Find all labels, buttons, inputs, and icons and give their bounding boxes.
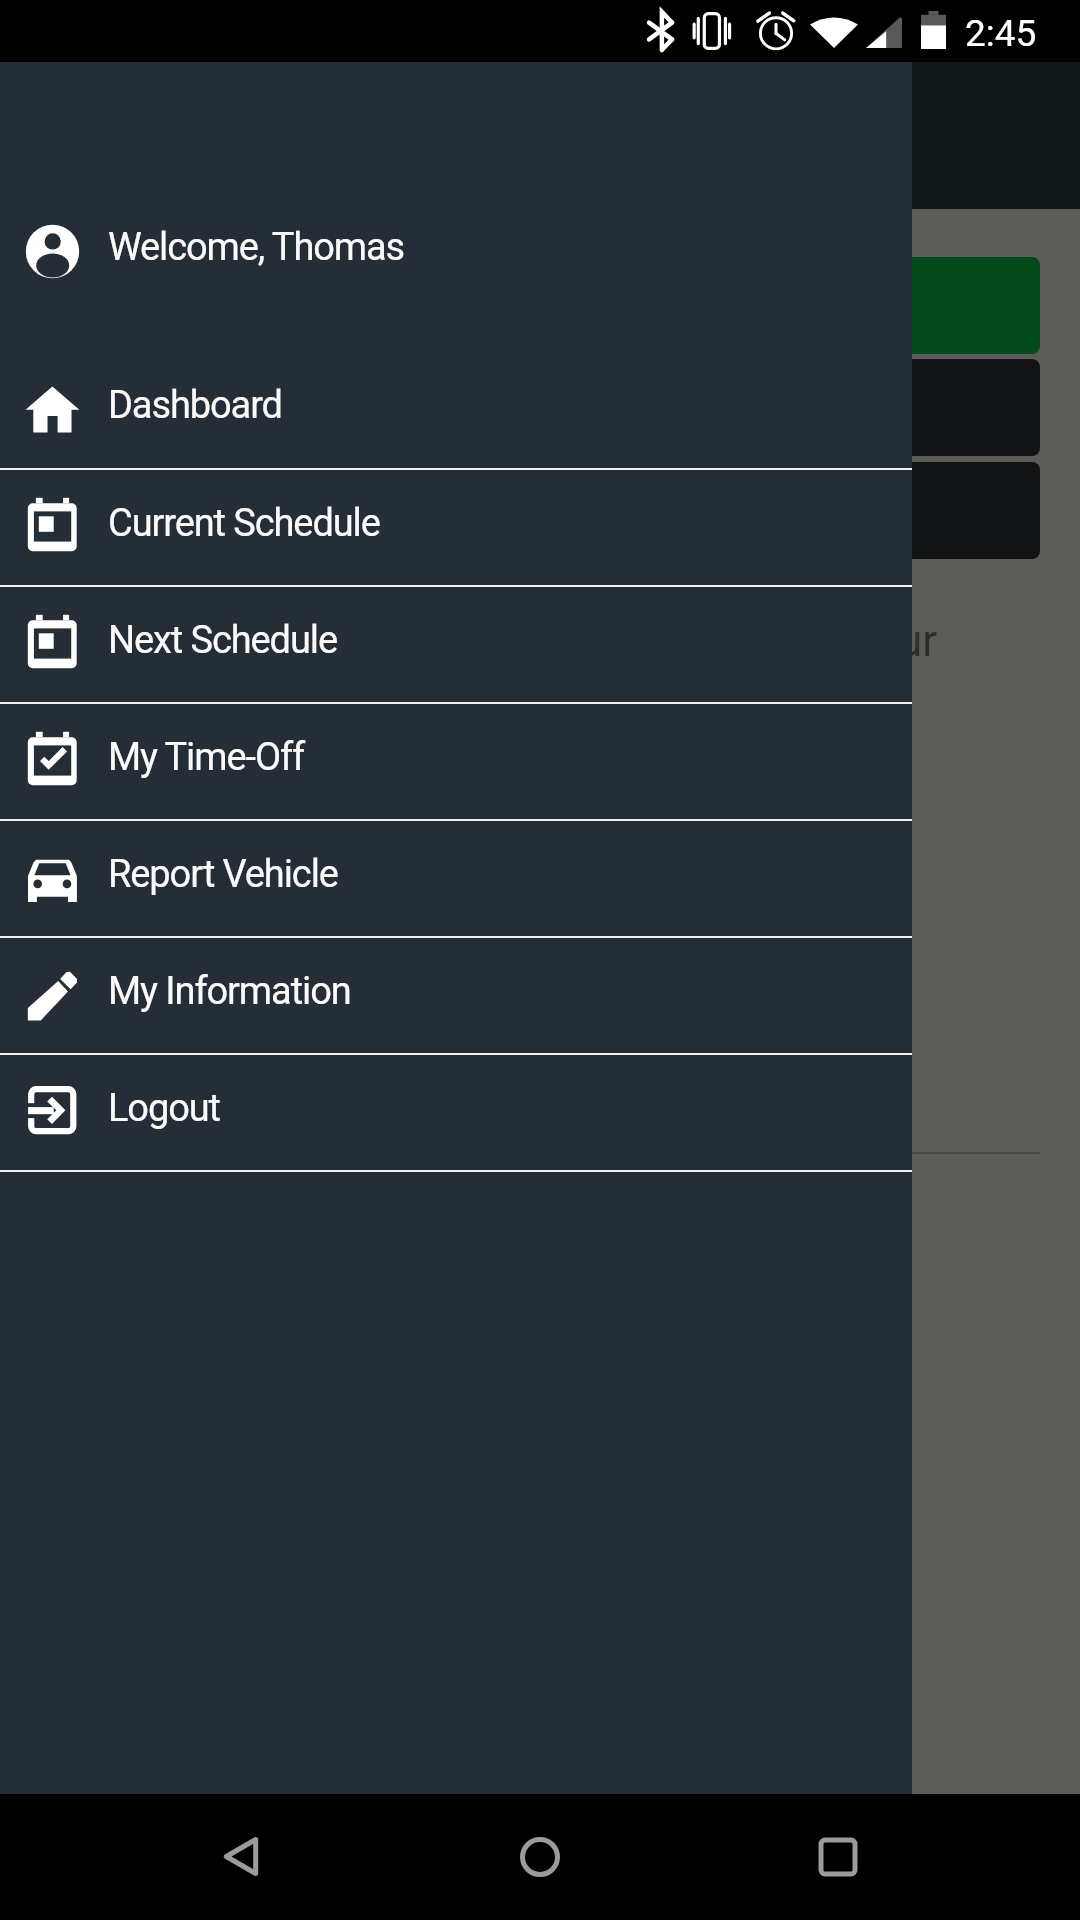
button[interactable]: Recent apps [778,1794,898,1920]
button[interactable]: Home [480,1794,600,1920]
staticText: Dashboard [108,383,282,428]
button[interactable]: Welcome, Thomas [0,192,912,309]
staticText: Your schedule for the hour [422,615,938,667]
staticText: 2:45 [965,12,1037,55]
button[interactable]: Report Vehicle [0,819,912,936]
button[interactable]: Current Schedule [0,468,912,585]
button[interactable]: My Time-Off [0,702,912,819]
button[interactable]: Next Schedule [0,585,912,702]
staticText: Current Schedule [108,501,380,546]
button[interactable]: Back [181,1794,301,1920]
staticText: Report Vehicle [108,852,338,897]
button[interactable]: Dashboard [0,350,912,467]
staticText: My Time-Off [108,735,305,780]
staticText: Logout [108,1086,220,1131]
staticText: My Information [108,969,351,1014]
button[interactable]: Logout [0,1053,912,1170]
staticText: Next Schedule [108,618,337,663]
staticText: Welcome, Thomas [108,225,405,270]
button[interactable]: My Information [0,936,912,1053]
